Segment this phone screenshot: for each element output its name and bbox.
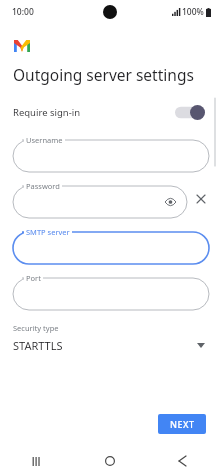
button[interactable]: Username	[13, 134, 209, 172]
button[interactable]: Home	[73, 446, 146, 476]
button[interactable]: Password	[13, 180, 187, 218]
button[interactable]: Security type	[0, 323, 219, 353]
staticText: 10:00	[12, 6, 34, 18]
staticText: SMTP server	[26, 227, 70, 237]
button[interactable]: SMTP server	[13, 226, 209, 264]
staticText: Security type	[13, 323, 59, 333]
staticText: 100%	[182, 6, 204, 18]
button[interactable]: Recent apps	[0, 446, 73, 476]
other: Gmail	[14, 40, 30, 52]
staticText: Password	[26, 181, 60, 191]
staticText: Username	[26, 135, 63, 145]
button[interactable]: Require sign-in	[0, 97, 219, 127]
staticText: Require sign-in	[13, 106, 81, 119]
button[interactable]: Show password	[163, 195, 177, 209]
button[interactable]: Clear password	[193, 191, 209, 207]
staticText: NEXT	[170, 418, 195, 430]
button[interactable]: NEXT	[158, 414, 206, 434]
staticText: Port	[26, 273, 41, 283]
staticText: STARTTLS	[13, 338, 63, 353]
staticText: Outgoing server settings	[13, 64, 194, 85]
button[interactable]: Back	[146, 446, 219, 476]
button[interactable]: Port	[13, 272, 209, 310]
